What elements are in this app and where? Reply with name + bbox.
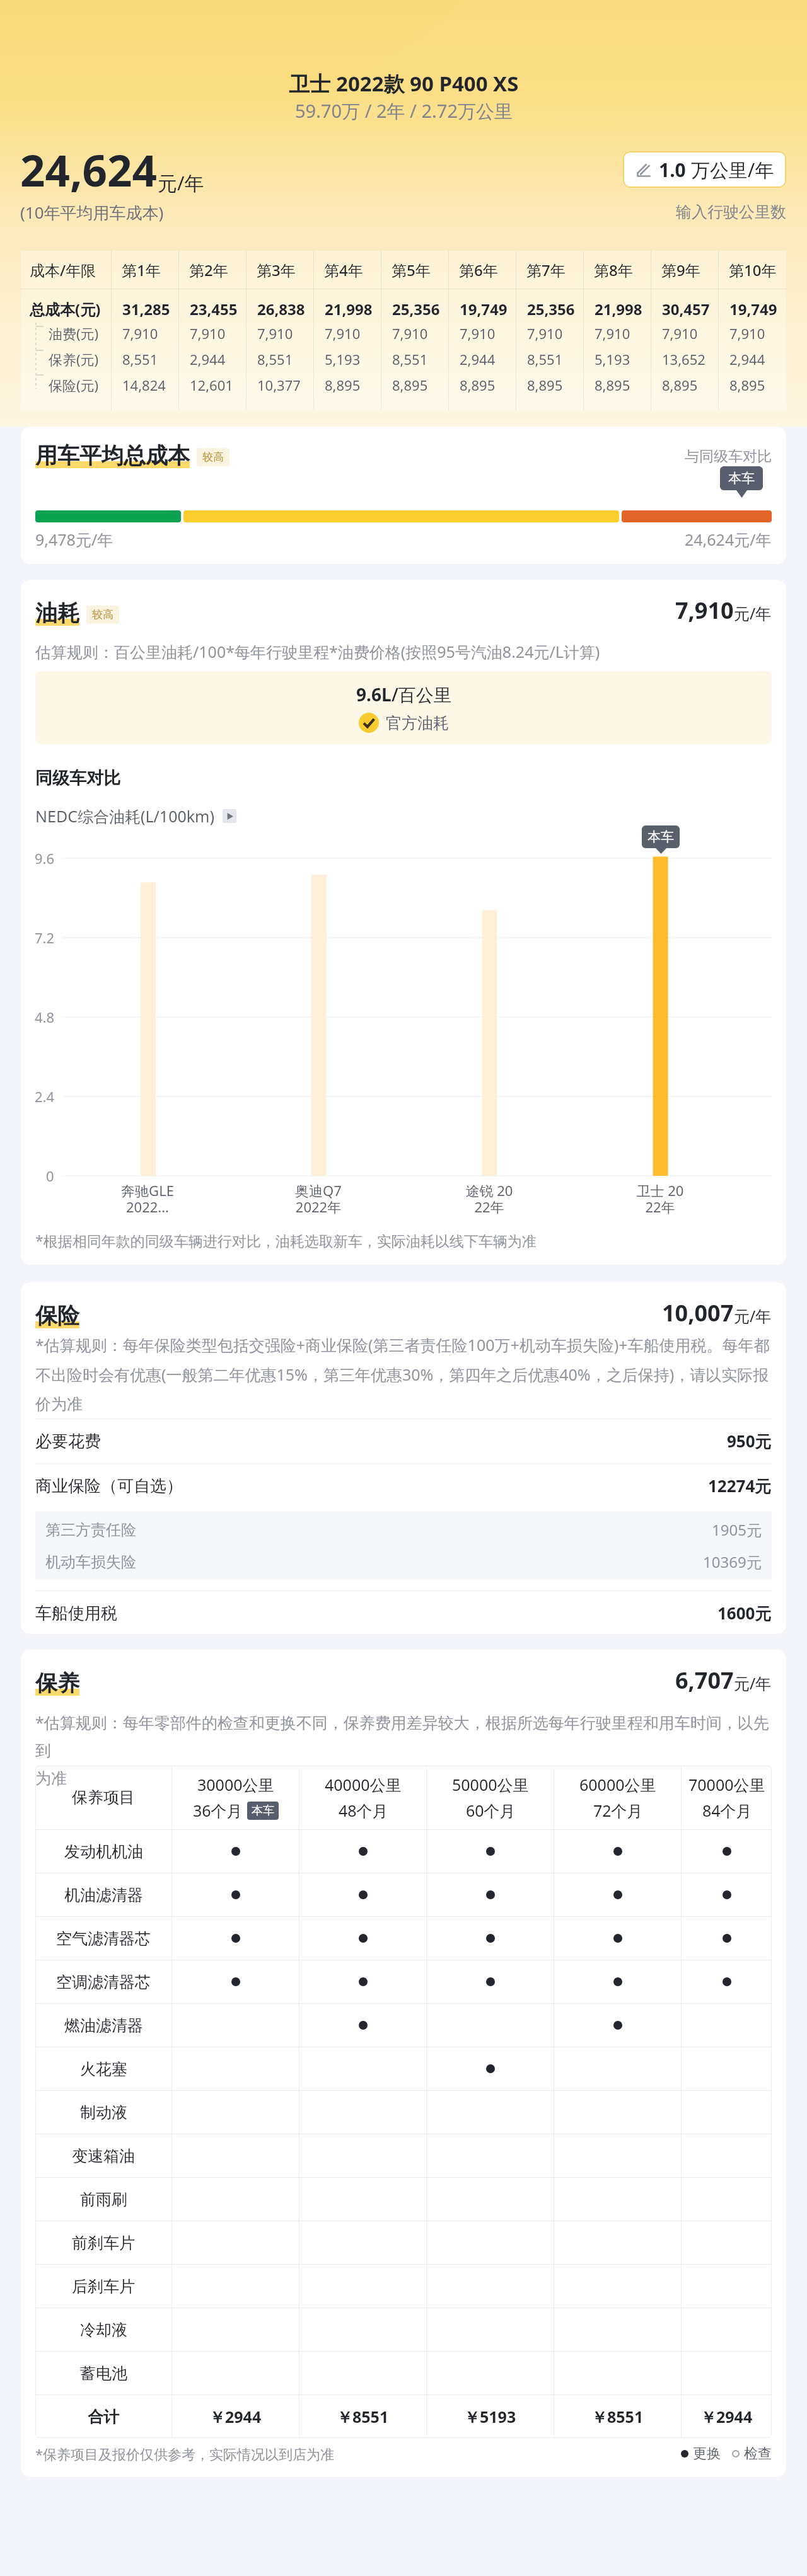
staticText: 72个月 [593,1800,643,1821]
staticText: 70000公里 [688,1774,765,1795]
staticText: 第2年 [189,260,228,280]
staticText: 23,455 [190,299,238,319]
staticText: 前雨刷 [80,2190,127,2209]
staticText: 7,910 [257,324,293,343]
staticText: 卫士 [289,69,336,98]
staticText: *根据相同年款的同级车辆进行对比，油耗选取新车，实际油耗以线下车辆为准 [35,1231,537,1250]
staticText: 本车 [728,470,755,486]
staticText: /百公里 [392,682,451,706]
staticText: 8,895 [392,376,428,394]
staticText: 14,824 [122,376,166,394]
staticText: 制动液 [80,2103,127,2122]
staticText: 60个月 [466,1800,516,1821]
staticText: 950元 [727,1430,772,1452]
staticText: 保险(元) [49,376,99,394]
staticText: 5,193 [325,350,361,369]
staticText: 21,998 [325,299,373,319]
staticText: 84个月 [702,1800,752,1821]
staticText: 10,377 [257,376,301,394]
staticText: 2,944 [729,350,765,369]
button[interactable]: 输入行驶公里数 [623,151,786,188]
staticText: 输入行驶公里数 [676,202,786,222]
staticText: 检查 [744,2445,772,2463]
staticText: 元/年 [734,602,772,624]
button[interactable]: 车船使用税 [35,1591,772,1634]
staticText: 保养(元) [49,350,99,369]
staticText: 6,707 [675,1665,734,1696]
staticText: 本车 [252,1803,274,1818]
staticText: 2022款 90 P400 XS [336,69,519,98]
staticText: *保养项目及报价仅供参考，实际情况以到店为准 [35,2444,335,2463]
staticText: 7,910 [729,324,765,343]
staticText: 4.8 [35,1008,55,1026]
staticText: 40000公里 [325,1774,402,1795]
staticText: 冷却液 [80,2320,127,2340]
staticText: 0 [46,1166,54,1185]
staticText: 7,910 [392,324,428,343]
staticText: 1600元 [717,1602,772,1624]
staticText: 合计 [88,2407,119,2427]
staticText: 必要花费 [35,1431,101,1452]
staticText: 8,895 [662,376,698,394]
staticText: 12,601 [190,376,233,394]
staticText: 总成本(元) [30,299,101,319]
staticText: 元/年 [734,1672,772,1694]
staticText: 8,895 [729,376,765,394]
staticText: 7,910 [527,324,563,343]
staticText: 7,910 [190,324,226,343]
staticText: 空气滤清器芯 [56,1929,151,1948]
staticText: 第8年 [594,260,633,280]
staticText: 8,551 [257,350,293,369]
staticText: 1905元 [712,1519,762,1540]
staticText: 7,910 [325,324,361,343]
staticText: 蓄电池 [80,2364,127,2383]
staticText: 火花塞 [80,2059,127,2079]
staticText: 第7年 [526,260,566,280]
staticText: 万公里/年 [691,157,774,183]
staticText: 保养 [35,1669,79,1697]
staticText: 前刹车片 [72,2233,135,2253]
staticText: 25,356 [392,299,440,319]
staticText: 9.6 [35,849,55,868]
staticText: 第6年 [459,260,498,280]
staticText: 商业保险（可自选） [35,1476,183,1497]
staticText: 36个月 [193,1800,243,1821]
staticText: ￥8551 [337,2406,389,2427]
staticText: 7,910 [595,324,630,343]
staticText: 保险 [35,1302,79,1330]
staticText: 9,478元/年 [35,529,113,550]
staticText: 估算规则：百公里油耗/100*每年行驶里程*油费价格(按照95号汽油8.24元/… [35,641,600,662]
staticText: 元/年 [158,170,204,196]
staticText: 30000公里 [197,1774,274,1795]
staticText: ￥8551 [591,2406,644,2427]
staticText: 2,944 [190,350,226,369]
staticText: 油费(元) [49,324,99,343]
staticText: 发动机机油 [64,1842,143,1861]
staticText: 同级车对比 [35,768,120,789]
staticText: 卫士 20 22年 [597,1181,723,1217]
staticText: 8,551 [527,350,563,369]
staticText: 油耗 [35,599,79,627]
staticText: ￥2944 [209,2406,262,2427]
staticText: 成本/年限 [30,260,96,280]
staticText: 机动车损失险 [45,1553,136,1572]
button[interactable]: 播放 [223,809,236,823]
staticText: 26,838 [257,299,305,319]
staticText: 8,895 [325,376,361,394]
staticText: 较高 [92,608,113,621]
button[interactable]: 必要花费 [35,1419,772,1463]
staticText: 59.70万 / 2年 / 2.72万公里 [295,98,513,124]
staticText: *估算规则：每年零部件的检查和更换不同，保养费用差异较大，根据所选每年行驶里程和… [35,1711,772,1788]
staticText: 5,193 [595,350,630,369]
staticText: 奥迪Q7 2022年 [255,1181,381,1217]
button[interactable]: 商业保险（可自选） [35,1464,772,1508]
staticText: 8,895 [460,376,496,394]
staticText: 机油滤清器 [64,1885,143,1905]
staticText: 7,910 [460,324,496,343]
staticText: 车船使用税 [35,1603,117,1624]
staticText: 13,652 [662,350,705,369]
staticText: 7,910 [122,324,158,343]
staticText: 用车平均总成本 [35,442,190,469]
staticText: 奔驰GLE 2022... [84,1181,211,1217]
staticText: 变速箱油 [72,2146,135,2166]
